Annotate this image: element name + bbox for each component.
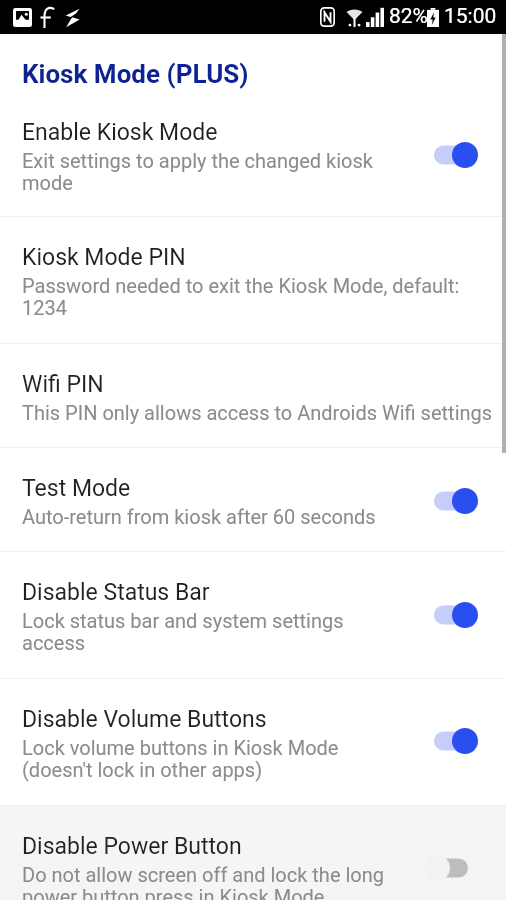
button[interactable]: Toggle on xyxy=(413,473,497,529)
staticText: 82% xyxy=(389,4,428,29)
button[interactable]: Toggle on xyxy=(413,713,497,769)
staticText: Auto-return from kiosk after 60 seconds xyxy=(22,505,376,528)
button[interactable]: Toggle off xyxy=(405,840,489,896)
staticText: Disable Status Bar xyxy=(22,579,210,606)
staticText: Kiosk Mode (PLUS) xyxy=(22,59,249,89)
staticText: 15:00 xyxy=(444,4,497,29)
staticText: Disable Power Button xyxy=(22,833,242,860)
button[interactable]: Disable Volume Buttons xyxy=(0,679,506,805)
staticText: This PIN only allows access to Androids … xyxy=(22,401,493,424)
button[interactable]: Toggle on xyxy=(413,127,497,183)
button[interactable]: Disable Status Bar xyxy=(0,552,506,678)
staticText: Lock volume buttons in Kiosk Mode (doesn… xyxy=(22,736,413,782)
button[interactable]: Disable Power Button xyxy=(0,806,506,900)
staticText: Lock status bar and system settings acce… xyxy=(22,609,402,655)
staticText: Wifi PIN xyxy=(22,371,104,398)
button[interactable]: Enable Kiosk Mode xyxy=(0,100,506,216)
staticText: Enable Kiosk Mode xyxy=(22,119,218,146)
button[interactable]: Kiosk Mode PIN xyxy=(0,217,506,343)
staticText: Password needed to exit the Kiosk Mode, … xyxy=(22,274,502,320)
button[interactable]: Toggle on xyxy=(413,587,497,643)
staticText: Exit settings to apply the changed kiosk… xyxy=(22,149,413,195)
staticText: Kiosk Mode PIN xyxy=(22,244,186,271)
button[interactable]: Wifi PIN xyxy=(0,344,506,447)
staticText: Do not allow screen off and lock the lon… xyxy=(22,863,413,900)
staticText: Disable Volume Buttons xyxy=(22,706,267,733)
staticText: Test Mode xyxy=(22,475,131,502)
button[interactable]: Test Mode xyxy=(0,448,506,551)
